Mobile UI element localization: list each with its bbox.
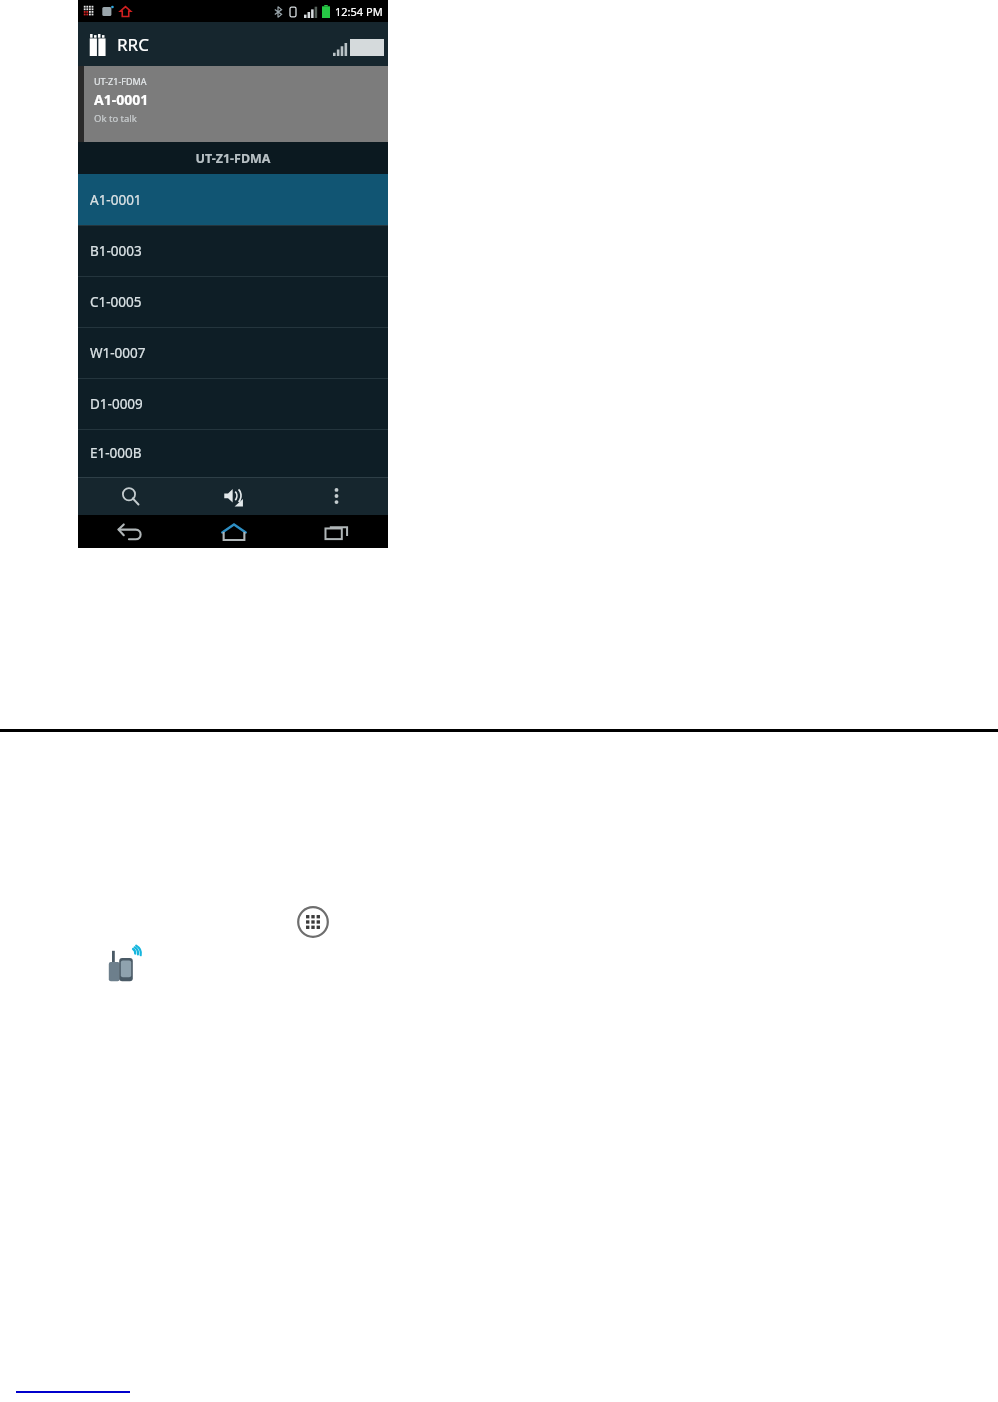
button[interactable]: Back bbox=[78, 515, 182, 548]
staticText: C1-0005 bbox=[90, 293, 142, 311]
staticText: W1-0007 bbox=[90, 344, 146, 362]
button[interactable]: D1-0009 bbox=[78, 378, 388, 429]
staticText: RRC bbox=[117, 33, 149, 56]
staticText: UT-Z1-FDMA bbox=[195, 150, 271, 167]
staticText: A1-0001 bbox=[90, 191, 142, 209]
button[interactable]: Recent apps bbox=[285, 515, 388, 548]
button[interactable]: UT-Z1-FDMA bbox=[78, 66, 388, 142]
staticText: D1-0009 bbox=[90, 395, 143, 413]
staticText: UT-Z1-FDMA bbox=[94, 75, 147, 87]
button[interactable]: Audio output bbox=[182, 477, 285, 515]
button[interactable]: W1-0007 bbox=[78, 327, 388, 378]
button[interactable]: RRC bbox=[89, 33, 149, 56]
staticText: 12:54 PM bbox=[335, 4, 383, 19]
button[interactable]: A1-0001 bbox=[78, 174, 388, 225]
staticText: A1-0001 bbox=[94, 90, 149, 109]
button[interactable]: Home bbox=[182, 515, 285, 548]
staticText: Ok to talk bbox=[94, 112, 137, 125]
button[interactable]: B1-0003 bbox=[78, 225, 388, 276]
button[interactable]: C1-0005 bbox=[78, 276, 388, 327]
staticText: B1-0003 bbox=[90, 242, 142, 260]
button[interactable]: More options bbox=[285, 477, 388, 515]
staticText: E1-000B bbox=[90, 444, 142, 462]
button[interactable]: Search bbox=[78, 477, 182, 515]
button[interactable]: E1-000B bbox=[78, 429, 388, 477]
